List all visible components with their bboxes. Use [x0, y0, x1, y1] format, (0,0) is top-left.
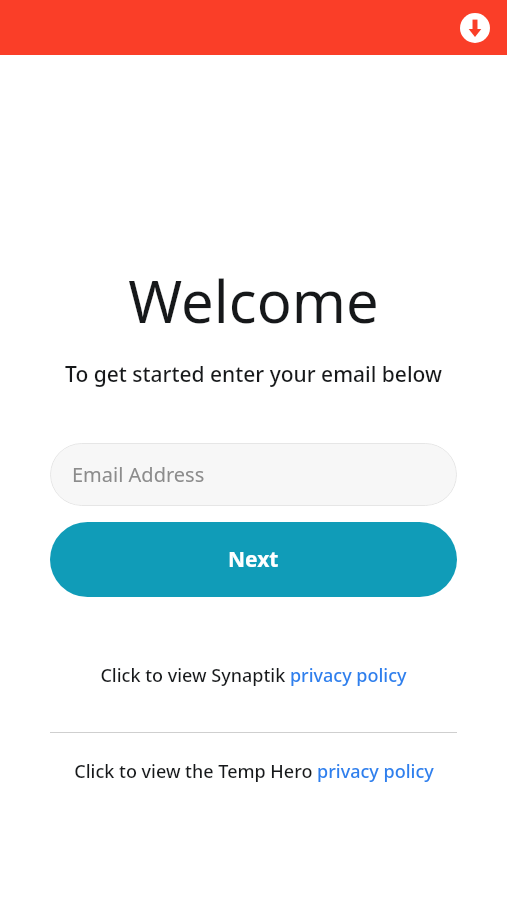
button[interactable]: Click to view the Temp Hero privacy poli… — [66, 755, 442, 788]
staticText: To get started enter your email below — [65, 360, 442, 389]
button[interactable]: Email Address — [50, 443, 457, 506]
staticText: Click to view the Temp Hero privacy poli… — [74, 759, 434, 784]
staticText: Next — [228, 545, 279, 574]
button[interactable]: Download — [453, 6, 497, 50]
staticText: Welcome — [128, 261, 379, 340]
staticText: Email Address — [72, 461, 205, 488]
button[interactable]: Click to view Synaptik privacy policy — [92, 659, 415, 692]
button[interactable]: Next — [50, 522, 457, 597]
staticText: Click to view Synaptik privacy policy — [100, 663, 407, 688]
